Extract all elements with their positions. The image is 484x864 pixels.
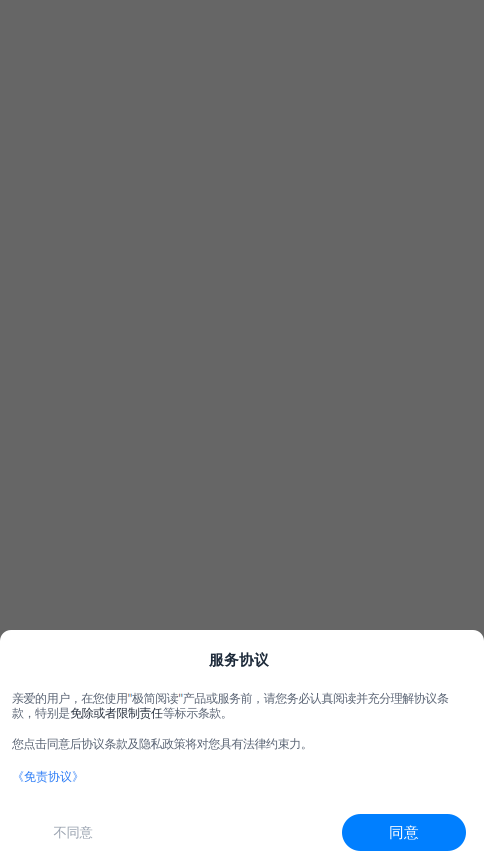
- staticText: 等标示条款。: [163, 706, 233, 721]
- button[interactable]: 《免责协议》: [12, 769, 84, 784]
- button[interactable]: 同意: [342, 814, 466, 851]
- staticText: 款，特别是: [12, 706, 70, 721]
- staticText: 服务协议: [209, 651, 269, 669]
- staticText: 同意: [389, 823, 419, 841]
- staticText: 不同意: [53, 824, 92, 841]
- staticText: 免除或者限制责任: [70, 706, 163, 721]
- staticText: 《免责协议》: [12, 769, 84, 784]
- staticText: 您点击同意后协议条款及隐私政策将对您具有法律约束力。: [12, 737, 313, 751]
- button[interactable]: 不同意: [30, 814, 116, 851]
- staticText: 亲爱的用户，在您使用"极简阅读"产品或服务前，请您务必认真阅读并充分理解协议条: [12, 690, 449, 706]
